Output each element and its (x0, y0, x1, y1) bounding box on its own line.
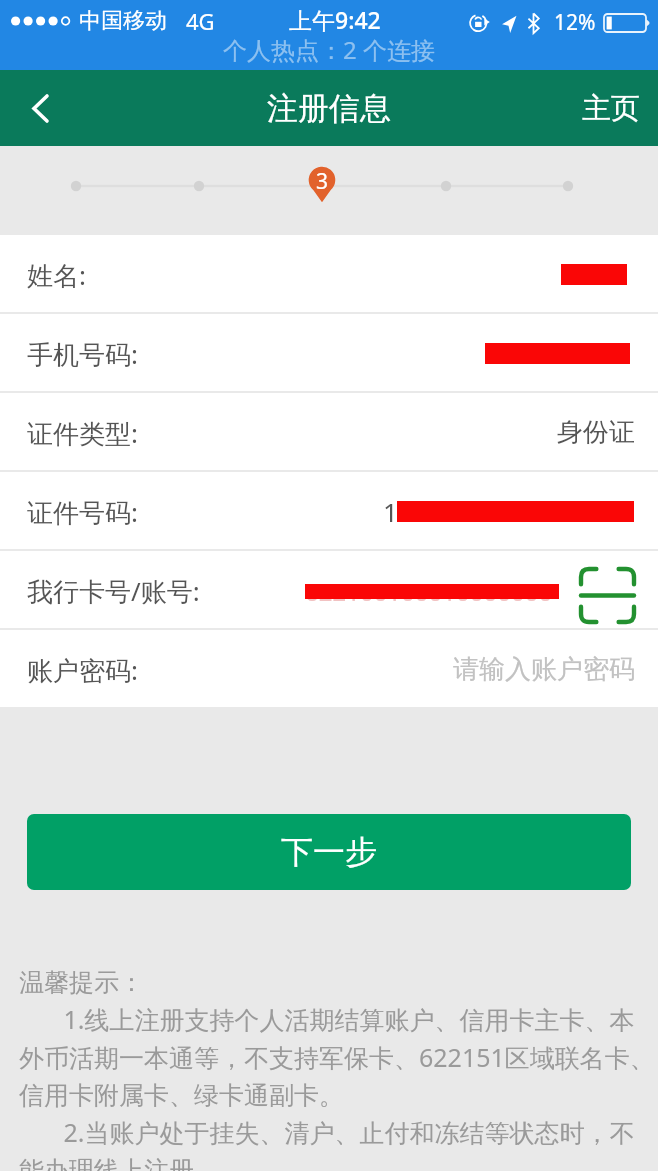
staticText: 主页 (582, 90, 640, 127)
button[interactable]: 我行卡号/账号: (0, 551, 658, 630)
staticText: 注册信息 (267, 89, 391, 128)
staticText: 姓名: (27, 257, 86, 293)
button[interactable]: 主页 (564, 70, 658, 146)
button[interactable]: 证件类型: (0, 393, 658, 472)
button[interactable]: 姓名: (0, 235, 658, 314)
button[interactable]: Back (0, 70, 80, 146)
button[interactable]: Scan card number (579, 567, 635, 623)
staticText: 1 (383, 494, 398, 529)
staticText: 我行卡号/账号: (27, 573, 200, 609)
staticText: 请输入账户密码 (453, 653, 635, 686)
staticText: 12% (554, 8, 596, 37)
staticText: 身份证 (557, 416, 635, 449)
staticText: 证件类型: (27, 415, 138, 451)
staticText: 账户密码: (27, 652, 138, 688)
staticText: 手机号码: (27, 336, 138, 372)
staticText: 下一步 (281, 832, 377, 872)
staticText: 6221001000100000000 (305, 575, 559, 605)
staticText: 中国移动 (79, 7, 167, 35)
staticText: 个人热点：2 个连接 (223, 33, 435, 66)
staticText: 3 (316, 167, 329, 193)
staticText: 温馨提示： 1.线上注册支持个人活期结算账户、信用卡主卡、本 外币活期一本通等，… (19, 967, 655, 1171)
button[interactable]: 下一步 (27, 814, 631, 890)
staticText: 上午9:42 (289, 4, 381, 35)
button[interactable]: 手机号码: (0, 314, 658, 393)
staticText: 证件号码: (27, 494, 138, 530)
button[interactable]: 账户密码: (0, 630, 658, 709)
staticText: 4G (186, 6, 215, 36)
button[interactable]: 证件号码: (0, 472, 658, 551)
